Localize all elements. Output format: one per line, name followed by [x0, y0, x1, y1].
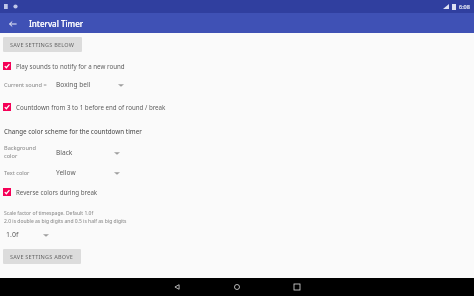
staticText: Interval Timer: [29, 18, 84, 29]
button[interactable]: 1.0f: [4, 228, 49, 242]
button[interactable]: Reverse colors during break: [0, 186, 474, 198]
staticText: Text color: [4, 169, 48, 177]
button[interactable]: Black: [48, 145, 120, 160]
button[interactable]: Back: [6, 17, 19, 30]
staticText: SAVE SETTINGS ABOVE: [10, 253, 74, 260]
button[interactable]: SAVE SETTINGS ABOVE: [3, 249, 81, 264]
staticText: Background color: [4, 144, 48, 160]
button[interactable]: Play sounds to notify for a new round: [0, 60, 474, 72]
staticText: Boxing bell: [56, 80, 91, 89]
staticText: Yellow: [56, 168, 76, 177]
button[interactable]: Boxing bell: [52, 77, 124, 92]
staticText: Scale factor of timespage. Default 1.0f: [4, 210, 94, 217]
button[interactable]: Home: [217, 278, 257, 296]
staticText: 6:08: [459, 3, 470, 10]
button[interactable]: Recent apps: [277, 278, 317, 296]
button[interactable]: Back: [157, 278, 197, 296]
staticText: Countdown from 3 to 1 before end of roun…: [16, 103, 166, 111]
staticText: Current sound =: [4, 81, 52, 89]
button[interactable]: Yellow: [48, 165, 120, 180]
staticText: Play sounds to notify for a new round: [16, 62, 125, 70]
staticText: 1.0f: [6, 230, 19, 240]
staticText: Black: [56, 148, 73, 157]
button[interactable]: Countdown from 3 to 1 before end of roun…: [0, 101, 474, 113]
staticText: Change color scheme for the countdown ti…: [4, 127, 142, 135]
staticText: Reverse colors during break: [16, 188, 98, 196]
button[interactable]: SAVE SETTINGS BELOW: [3, 37, 82, 52]
staticText: SAVE SETTINGS BELOW: [10, 41, 75, 48]
staticText: 2.0 is double as big digits and 0.5 is h…: [4, 218, 127, 225]
